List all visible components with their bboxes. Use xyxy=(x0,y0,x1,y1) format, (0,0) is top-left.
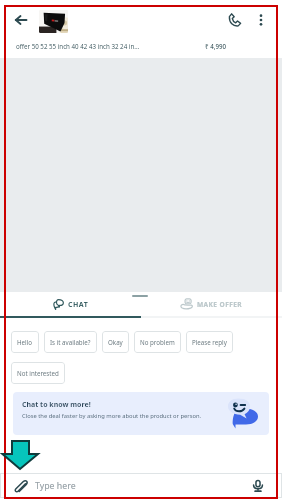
button[interactable]: Please reply xyxy=(186,331,233,353)
button[interactable]: Back xyxy=(8,7,34,33)
button[interactable]: More options xyxy=(251,10,271,30)
staticText: Close the deal faster by asking more abo… xyxy=(22,412,202,420)
staticText: Type here xyxy=(35,480,76,492)
staticText: ₹ 4,990 xyxy=(205,42,226,50)
staticText: Okay xyxy=(108,338,123,346)
button[interactable]: Voice message xyxy=(249,477,267,495)
staticText: Please reply xyxy=(192,338,227,346)
button[interactable]: Chat to know more! xyxy=(13,392,269,435)
button[interactable]: Is it available? xyxy=(44,331,97,353)
button[interactable]: MAKE OFFER xyxy=(141,292,282,316)
button[interactable]: Attach xyxy=(11,477,29,495)
button[interactable]: Call xyxy=(222,7,248,33)
button[interactable]: Product image xyxy=(39,10,68,33)
staticText: offer 50 52 55 inch 40 42 43 inch 32 24 … xyxy=(16,42,205,50)
staticText: CHAT xyxy=(68,300,89,310)
staticText: Is it available? xyxy=(50,338,91,346)
staticText: Not interested xyxy=(17,369,59,377)
button[interactable]: Not interested xyxy=(11,362,65,384)
staticText: No problem xyxy=(140,338,175,346)
button[interactable]: Okay xyxy=(102,331,129,353)
button[interactable]: Hello xyxy=(11,331,39,353)
button[interactable]: No problem xyxy=(134,331,181,353)
staticText: MAKE OFFER xyxy=(197,300,243,309)
staticText: Chat to know more! xyxy=(22,400,91,410)
staticText: Hello xyxy=(17,338,33,346)
button[interactable]: CHAT xyxy=(0,292,141,316)
